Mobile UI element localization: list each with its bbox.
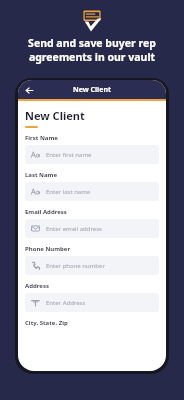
button[interactable]: Back xyxy=(22,83,36,97)
staticText: New Client xyxy=(73,85,111,95)
staticText: Phone Number xyxy=(25,245,71,253)
staticText: Address xyxy=(25,282,49,290)
button[interactable]: Enter Address xyxy=(25,293,159,312)
staticText: Enter last name xyxy=(46,188,91,196)
staticText: Enter Address xyxy=(46,299,86,307)
button[interactable]: Enter first name xyxy=(25,145,159,164)
staticText: Enter phone number xyxy=(46,262,105,270)
staticText: Last Name xyxy=(25,171,58,179)
staticText: Email Address xyxy=(25,208,67,216)
staticText: New Client xyxy=(25,108,85,123)
button[interactable]: Enter email address xyxy=(25,219,159,238)
staticText: Send and save buyer rep agreements in ou… xyxy=(28,36,156,64)
staticText: First Name xyxy=(25,134,58,142)
staticText: Enter email address xyxy=(46,225,102,233)
button[interactable]: Enter last name xyxy=(25,182,159,201)
button[interactable]: Enter phone number xyxy=(25,256,159,275)
staticText: City, State, Zip xyxy=(25,319,68,327)
staticText: Enter first name xyxy=(46,151,92,159)
